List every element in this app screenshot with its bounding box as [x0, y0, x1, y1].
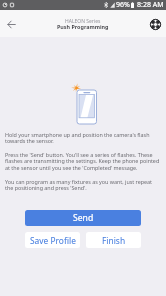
staticText: 96% [116, 0, 130, 10]
staticText: Finish [102, 235, 126, 246]
staticText: Push Programming [57, 23, 109, 30]
staticText: Hold your smartphone up and position the… [5, 131, 161, 145]
staticText: 8:28 AM [137, 0, 164, 10]
button[interactable]: Finish [86, 232, 141, 248]
button[interactable]: Back [2, 15, 20, 33]
button[interactable]: Help [147, 16, 163, 32]
staticText: HALEON Series [65, 18, 101, 25]
staticText: Press the 'Send' button. You'll see a se… [5, 151, 161, 172]
button[interactable]: Send [25, 210, 141, 226]
button[interactable]: Save Profile [25, 232, 80, 248]
staticText: You can program as many fixtures as you … [5, 178, 161, 192]
staticText: Save Profile [30, 235, 76, 246]
staticText: Send [73, 212, 94, 224]
